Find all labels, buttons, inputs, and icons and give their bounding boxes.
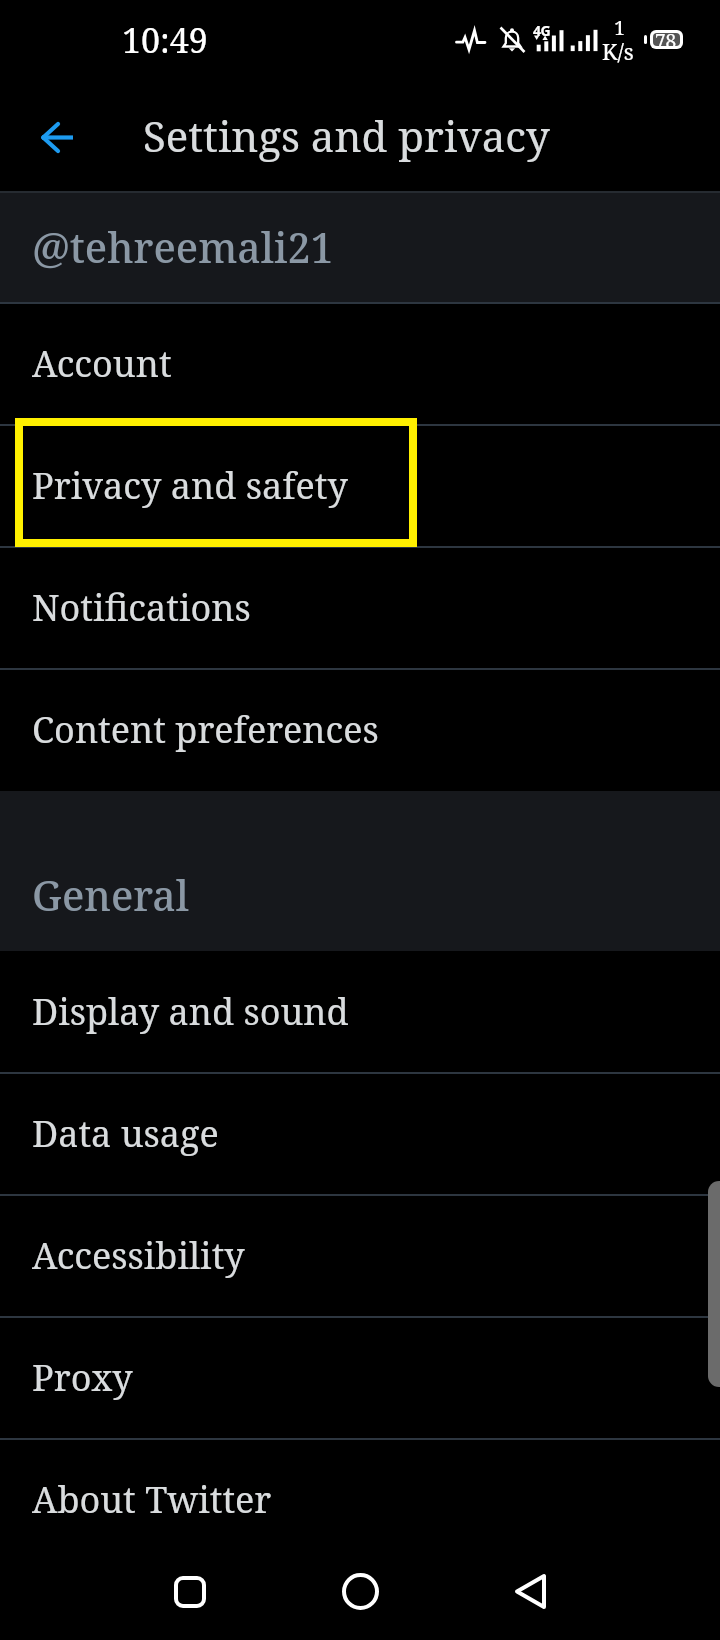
staticText: Proxy: [32, 1353, 133, 1402]
button[interactable]: About Twitter: [0, 1439, 720, 1561]
staticText: About Twitter: [32, 1475, 272, 1524]
button[interactable]: Accessibility: [0, 1195, 720, 1317]
button[interactable]: Recent apps: [150, 1552, 230, 1631]
button[interactable]: Back: [16, 96, 96, 184]
staticText: 1: [614, 14, 626, 41]
staticText: 4G: [533, 21, 551, 40]
staticText: 78: [655, 28, 677, 54]
staticText: Privacy and safety: [32, 461, 348, 510]
staticText: General: [32, 867, 190, 923]
staticText: K/s: [602, 36, 634, 66]
staticText: Settings and privacy: [143, 107, 550, 164]
staticText: Notifications: [32, 583, 251, 632]
button[interactable]: Display and sound: [0, 951, 720, 1073]
button[interactable]: Notifications: [0, 547, 720, 669]
button[interactable]: General: [0, 791, 720, 951]
staticText: Data usage: [32, 1109, 219, 1158]
button[interactable]: Account: [0, 303, 720, 425]
staticText: 10:49: [122, 17, 208, 63]
staticText: Content preferences: [32, 705, 379, 754]
staticText: Display and sound: [32, 987, 349, 1036]
button[interactable]: @tehreemali21: [0, 191, 720, 303]
staticText: Account: [32, 339, 172, 388]
button[interactable]: Content preferences: [0, 669, 720, 791]
staticText: @tehreemali21: [32, 219, 334, 275]
button[interactable]: Privacy and safety: [0, 425, 720, 547]
staticText: Accessibility: [32, 1231, 245, 1280]
button[interactable]: Back: [490, 1552, 570, 1631]
button[interactable]: Home: [320, 1552, 400, 1631]
button[interactable]: Proxy: [0, 1317, 720, 1439]
button[interactable]: Data usage: [0, 1073, 720, 1195]
